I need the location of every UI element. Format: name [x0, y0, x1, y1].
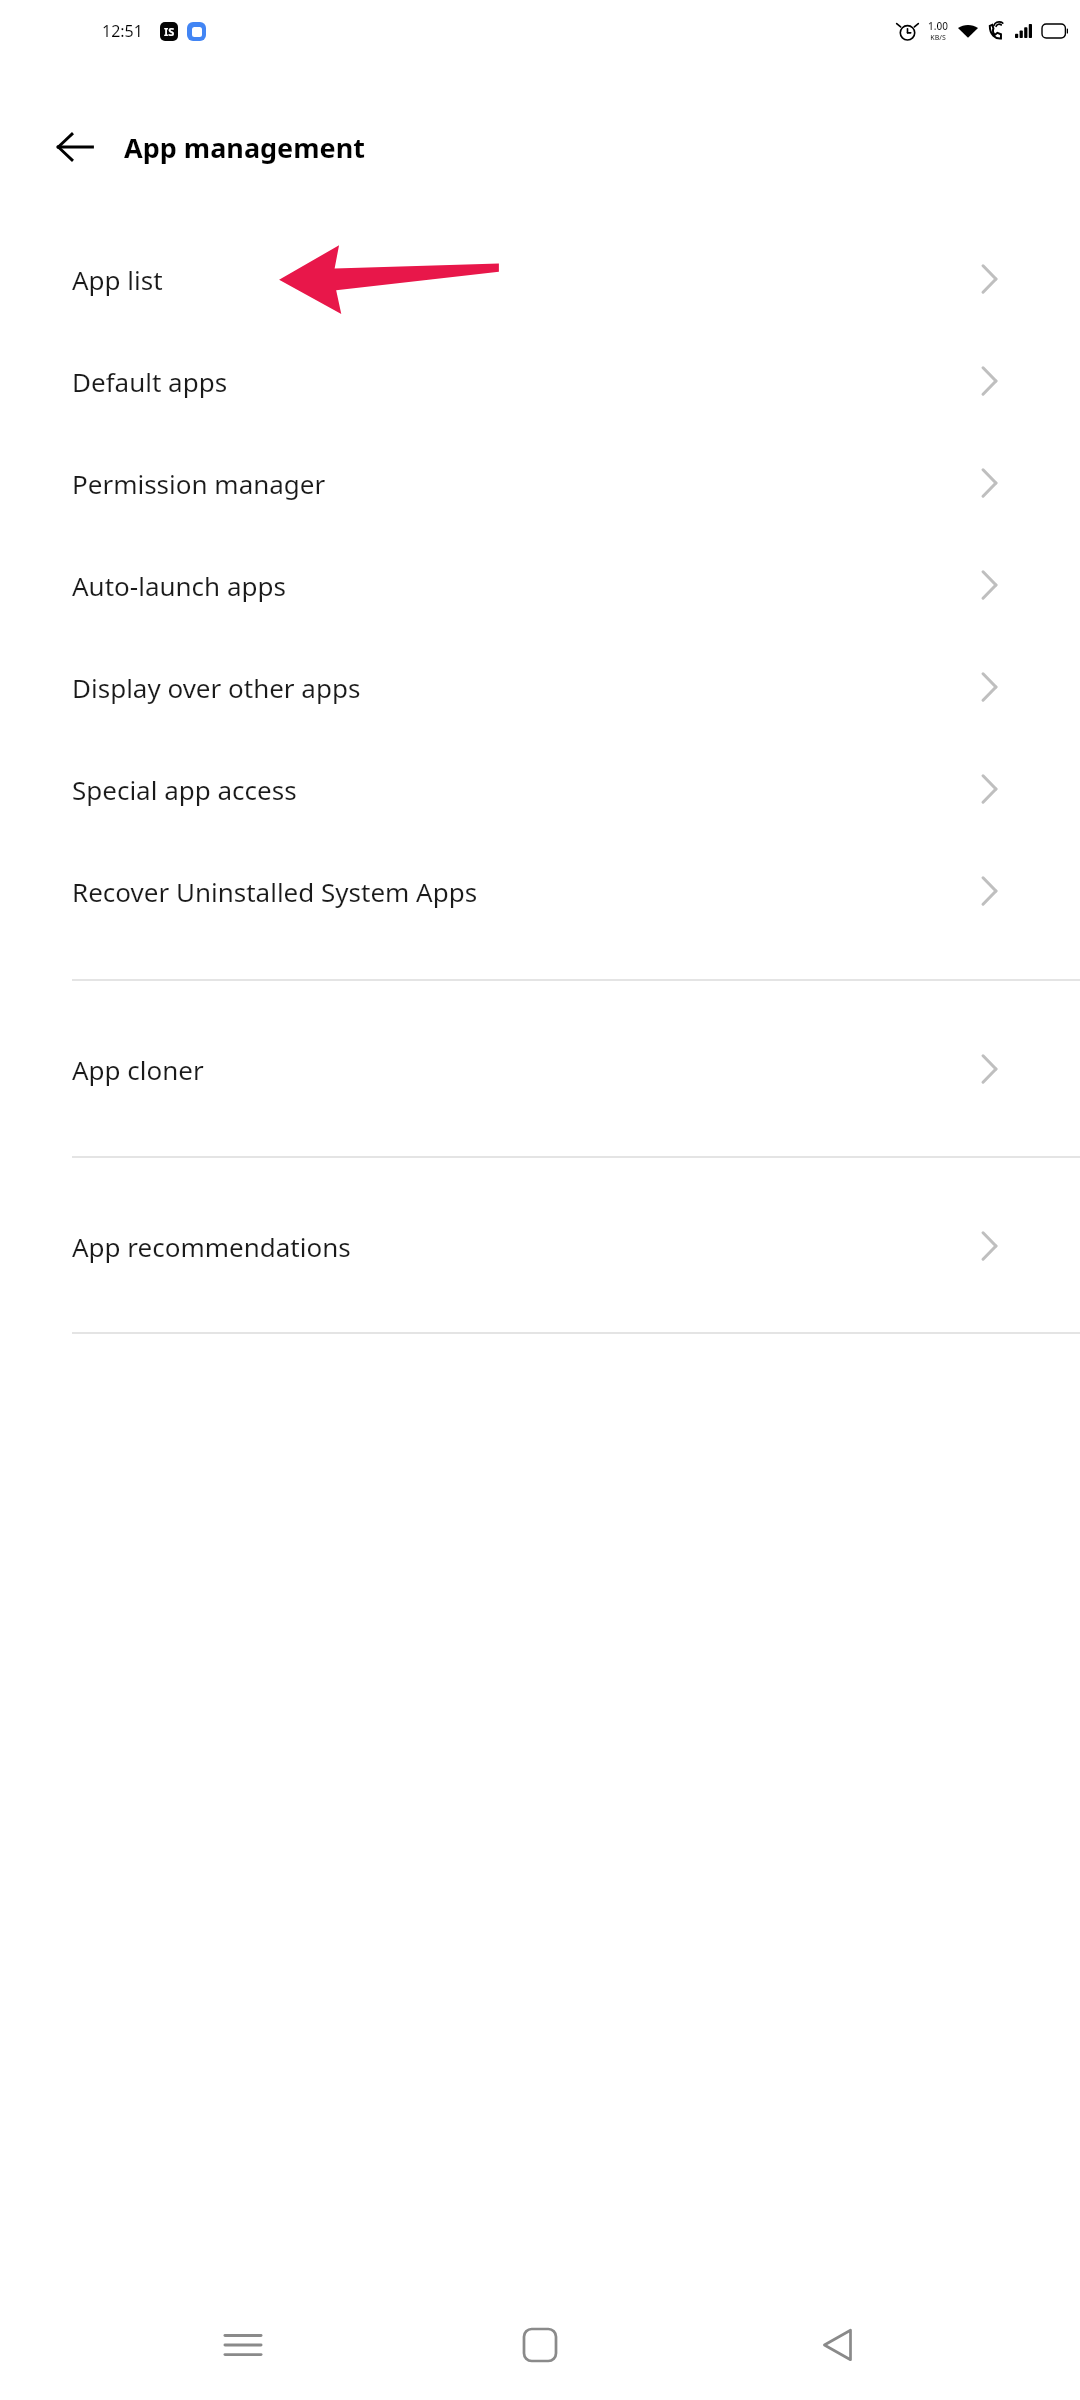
- staticText: App management: [124, 129, 365, 166]
- staticText: App cloner: [72, 1052, 204, 1087]
- staticText: Special app access: [72, 772, 297, 807]
- button[interactable]: Home: [486, 2291, 594, 2399]
- staticText: IS: [164, 24, 175, 39]
- button[interactable]: Back: [783, 2291, 891, 2399]
- staticText: Recover Uninstalled System Apps: [72, 874, 478, 909]
- staticText: Auto-launch apps: [72, 568, 286, 603]
- button[interactable]: Recent apps: [189, 2291, 297, 2399]
- staticText: KB/S: [930, 33, 946, 43]
- button[interactable]: Display over other apps: [0, 636, 1080, 738]
- button[interactable]: Default apps: [0, 330, 1080, 432]
- staticText: Permission manager: [72, 466, 326, 501]
- staticText: Display over other apps: [72, 670, 361, 705]
- button[interactable]: Permission manager: [0, 432, 1080, 534]
- button[interactable]: App recommendations: [0, 1195, 1080, 1297]
- button[interactable]: Recover Uninstalled System Apps: [0, 840, 1080, 942]
- staticText: Default apps: [72, 364, 228, 399]
- staticText: App recommendations: [72, 1229, 351, 1264]
- button[interactable]: Back: [48, 120, 102, 174]
- button[interactable]: Special app access: [0, 738, 1080, 840]
- staticText: App list: [72, 262, 163, 297]
- button[interactable]: App list: [0, 228, 1080, 330]
- button[interactable]: App cloner: [0, 1018, 1080, 1120]
- staticText: 1.00: [928, 19, 948, 33]
- staticText: 12:51: [102, 20, 143, 42]
- button[interactable]: Auto-launch apps: [0, 534, 1080, 636]
